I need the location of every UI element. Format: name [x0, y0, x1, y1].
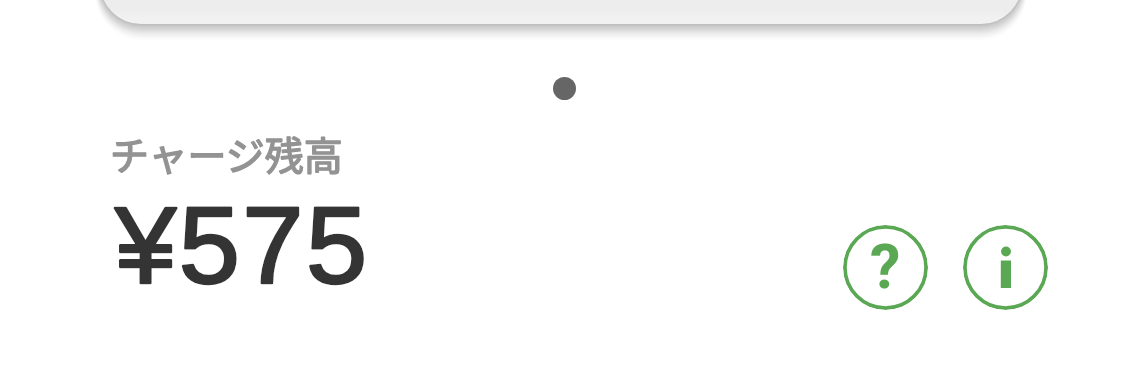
staticText: チャージ残高 [110, 125, 343, 181]
staticText: ¥575 [115, 183, 370, 306]
staticText: ¥575 [115, 183, 370, 306]
button[interactable]: Information [963, 225, 1048, 310]
staticText: チャージ残高 [110, 125, 343, 181]
button[interactable]: Help [843, 225, 928, 310]
staticText: ? [870, 231, 901, 302]
